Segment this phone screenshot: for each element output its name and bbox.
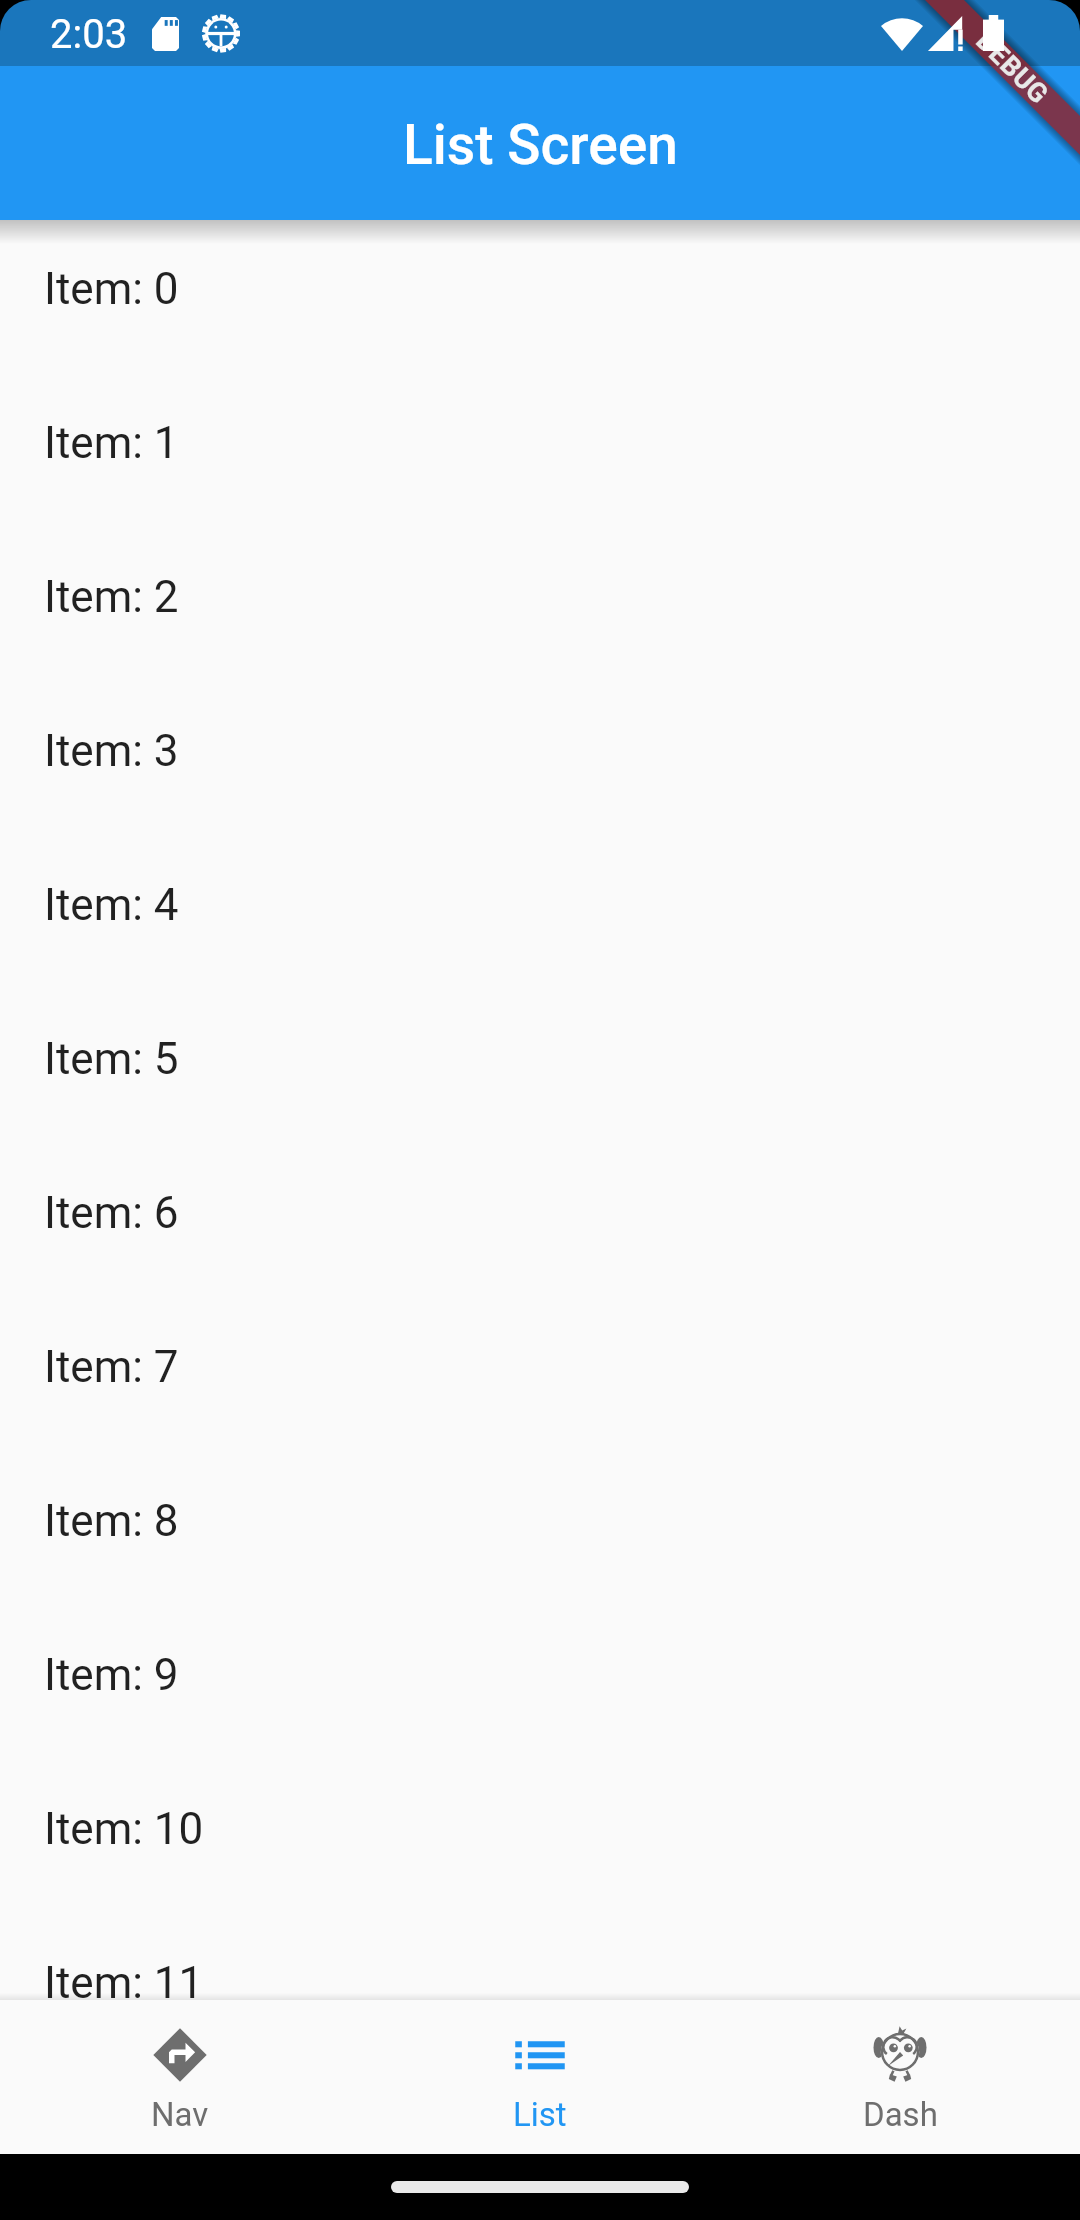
other: Mobile signal bbox=[928, 16, 963, 51]
staticText: List Screen bbox=[403, 113, 678, 177]
other: List bbox=[507, 2022, 573, 2088]
other: Wi-Fi bbox=[881, 16, 923, 51]
staticText: Item: 7 bbox=[44, 1341, 179, 1393]
other: Dash bbox=[867, 2022, 933, 2088]
button[interactable]: Item: 8 bbox=[0, 1444, 1080, 1598]
staticText: Item: 2 bbox=[44, 571, 179, 623]
staticText: Item: 8 bbox=[44, 1495, 179, 1547]
staticText: Item: 4 bbox=[44, 879, 179, 931]
button[interactable]: Item: 9 bbox=[0, 1598, 1080, 1752]
staticText: Item: 3 bbox=[44, 725, 179, 777]
button[interactable]: Item: 6 bbox=[0, 1136, 1080, 1290]
button[interactable]: Item: 0 bbox=[0, 220, 1080, 366]
staticText: Item: 0 bbox=[44, 263, 179, 315]
button[interactable]: Item: 4 bbox=[0, 828, 1080, 982]
button[interactable]: Item: 7 bbox=[0, 1290, 1080, 1444]
staticText: Nav bbox=[151, 2095, 209, 2134]
button[interactable]: Item: 2 bbox=[0, 520, 1080, 674]
button[interactable]: Navigate bbox=[0, 2000, 360, 2154]
other: Developer options bbox=[202, 14, 240, 53]
button[interactable]: Item: 5 bbox=[0, 982, 1080, 1136]
button[interactable]: List bbox=[360, 2000, 720, 2154]
other: SD card bbox=[152, 17, 179, 51]
other: Navigate bbox=[147, 2022, 213, 2088]
button[interactable]: Dash bbox=[720, 2000, 1080, 2154]
staticText: Dash bbox=[863, 2095, 938, 2134]
staticText: Item: 11 bbox=[44, 1957, 204, 2000]
staticText: Item: 5 bbox=[44, 1033, 179, 1085]
staticText: Item: 1 bbox=[44, 417, 179, 469]
staticText: Item: 9 bbox=[44, 1649, 179, 1701]
staticText: Item: 6 bbox=[44, 1187, 179, 1239]
staticText: 2:03 bbox=[50, 11, 128, 58]
staticText: List bbox=[513, 2095, 567, 2134]
button[interactable]: Item: 3 bbox=[0, 674, 1080, 828]
staticText: Item: 10 bbox=[44, 1803, 204, 1855]
button[interactable]: Item: 10 bbox=[0, 1752, 1080, 1906]
button[interactable]: Item: 11 bbox=[0, 1906, 1080, 2000]
other: Battery bbox=[983, 15, 1004, 51]
button[interactable]: Item: 1 bbox=[0, 366, 1080, 520]
